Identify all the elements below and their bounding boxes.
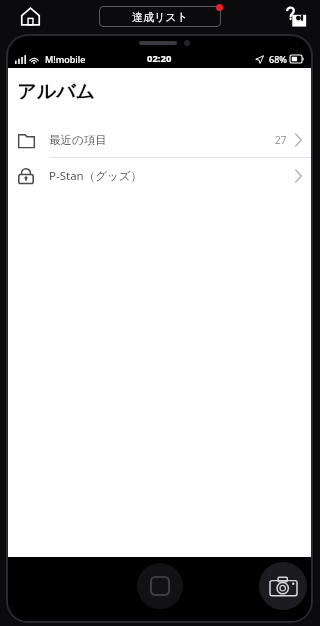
button[interactable]: ホーム <box>14 0 46 32</box>
button[interactable]: カメラ <box>259 562 307 610</box>
button[interactable]: 最近の項目 <box>8 122 311 157</box>
staticText: 02:20 <box>147 52 172 65</box>
staticText: 達成リスト <box>132 10 188 24</box>
button[interactable]: ホームボタン <box>137 563 183 609</box>
button[interactable]: 達成リスト <box>99 6 221 27</box>
button[interactable]: P-Stan（グッズ） <box>8 158 311 193</box>
staticText: P-Stan（グッズ） <box>49 168 295 184</box>
staticText: アルバム <box>17 80 95 104</box>
staticText: 68% <box>269 53 287 65</box>
staticText: M!mobile <box>45 53 86 65</box>
staticText: 27 <box>275 133 287 147</box>
staticText: 最近の項目 <box>49 133 275 147</box>
button[interactable]: ヘルプ <box>280 0 312 32</box>
